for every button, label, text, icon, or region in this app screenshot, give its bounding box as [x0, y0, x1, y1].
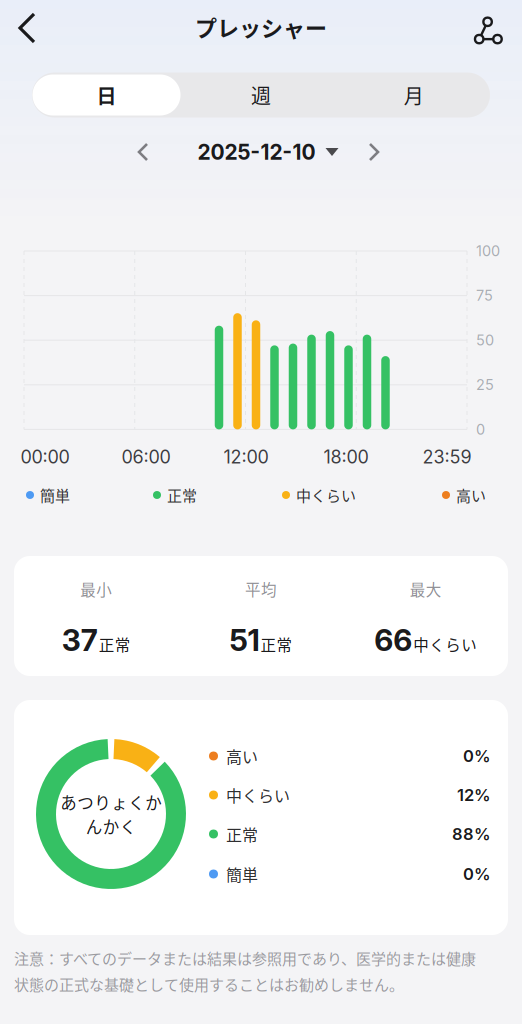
staticText: 06:00 [121, 446, 170, 468]
staticText: プレッシャー [195, 11, 327, 43]
staticText: 平均 [245, 578, 277, 600]
staticText: 最大 [410, 578, 442, 600]
button[interactable] [465, 6, 509, 50]
staticText: 12:00 [223, 446, 268, 468]
staticText: 00:00 [20, 446, 69, 468]
staticText: 注意：すべてのデータまたは結果は参照用であり、医学的または健康 [14, 947, 476, 969]
button[interactable] [8, 6, 52, 50]
staticText: 0 [476, 421, 485, 438]
staticText: 中くらい [296, 484, 356, 506]
staticText: 状態の正式な基礎として使用することはお勧めしません。 [14, 973, 404, 995]
staticText: 51 [229, 622, 259, 658]
staticText: 正常 [167, 484, 197, 506]
staticText: 50 [476, 331, 494, 349]
button[interactable]: 月 [340, 74, 488, 115]
staticText: 中くらい [226, 783, 290, 807]
staticText: 0% [463, 746, 491, 766]
button[interactable] [121, 130, 165, 174]
staticText: 正常 [99, 633, 131, 655]
staticText: 100 [476, 242, 500, 260]
staticText: 75 [476, 287, 493, 304]
staticText: 18:00 [323, 446, 368, 468]
staticText: 23:59 [422, 446, 471, 468]
staticText: 25 [476, 376, 494, 393]
staticText: 日 [96, 80, 116, 109]
button[interactable] [352, 130, 396, 174]
staticText: あつりょくか んかく [60, 790, 162, 838]
staticText: 12% [457, 785, 491, 805]
staticText: 最小 [80, 578, 112, 600]
staticText: 週 [251, 80, 271, 109]
staticText: 正常 [226, 822, 258, 846]
staticText: 正常 [260, 633, 292, 655]
staticText: 月 [404, 80, 424, 109]
staticText: 中くらい [413, 633, 477, 655]
button[interactable]: 2025-12-10 [197, 139, 338, 165]
button[interactable]: 日 [32, 74, 180, 115]
staticText: 0% [463, 864, 491, 884]
button[interactable]: 週 [187, 74, 335, 115]
staticText: 66 [374, 622, 412, 658]
staticText: 37 [62, 622, 98, 658]
staticText: 簡単 [40, 484, 70, 506]
staticText: 2025-12-10 [197, 139, 315, 165]
staticText: 高い [456, 484, 486, 506]
staticText: 簡単 [226, 862, 258, 886]
staticText: 高い [226, 744, 258, 768]
staticText: 88% [452, 824, 491, 844]
